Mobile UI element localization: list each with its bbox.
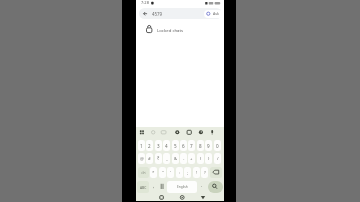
staticText: ABC	[140, 185, 147, 189]
button[interactable]: 9	[205, 140, 212, 151]
button[interactable]: 7	[188, 140, 195, 151]
button[interactable]: )	[205, 153, 212, 164]
button[interactable]: English	[167, 181, 197, 193]
button[interactable]: /	[214, 153, 221, 164]
button[interactable]: +	[188, 153, 195, 164]
staticText: ,	[153, 183, 155, 189]
staticText: ₹	[157, 156, 160, 162]
button[interactable]: 0	[214, 140, 221, 151]
button[interactable]	[210, 167, 222, 178]
button[interactable]: ;	[184, 167, 191, 178]
staticText: 5	[174, 143, 177, 149]
button[interactable]: ABC	[137, 181, 149, 193]
button[interactable]	[136, 22, 224, 35]
staticText: 3	[157, 143, 160, 149]
button[interactable]: (	[197, 153, 204, 164]
staticText: "	[162, 170, 164, 176]
button[interactable]: @	[138, 153, 145, 164]
staticText: Locked chats	[157, 27, 184, 33]
staticText: 0	[216, 143, 219, 149]
button[interactable]: -	[180, 153, 187, 164]
button[interactable]: ₹	[155, 153, 162, 164]
button[interactable]: &	[172, 153, 179, 164]
button[interactable]	[208, 181, 223, 193]
staticText: -	[183, 156, 185, 162]
staticText: *	[152, 170, 155, 176]
staticText: English	[177, 185, 188, 189]
staticText: 8	[199, 143, 202, 149]
button[interactable]: #	[146, 153, 153, 164]
staticText: ;	[187, 170, 189, 176]
button[interactable]: '	[167, 167, 174, 178]
button[interactable]: :	[176, 167, 183, 178]
button[interactable]: "	[159, 167, 166, 178]
staticText: ?	[204, 170, 206, 176]
staticText: 4579	[152, 11, 163, 17]
staticText: .	[201, 182, 203, 188]
staticText: /	[217, 156, 219, 162]
staticText: +	[190, 156, 193, 162]
button[interactable]: ?	[201, 167, 208, 178]
staticText: 9	[207, 143, 210, 149]
staticText: 6	[182, 143, 185, 149]
button[interactable]: 8	[197, 140, 204, 151]
button[interactable]	[139, 8, 222, 19]
button[interactable]: 4	[163, 140, 170, 151]
staticText: 4	[165, 143, 168, 149]
staticText: _	[166, 156, 168, 162]
staticText: #	[148, 156, 151, 162]
button[interactable]: 1	[138, 140, 145, 151]
button[interactable]: 3	[155, 140, 162, 151]
staticText: !	[196, 170, 198, 176]
staticText: 2	[148, 143, 151, 149]
button[interactable]: 2	[146, 140, 153, 151]
staticText: :	[179, 170, 181, 176]
staticText: @	[140, 156, 144, 162]
button[interactable]: *	[150, 167, 157, 178]
button[interactable]: _	[163, 153, 170, 164]
staticText: '	[170, 170, 171, 176]
staticText: 1	[140, 143, 143, 149]
button[interactable]: !	[193, 167, 200, 178]
staticText: 7	[190, 143, 193, 149]
staticText: )	[208, 156, 210, 162]
button[interactable]	[204, 10, 223, 18]
staticText: 7:28	[141, 0, 149, 5]
staticText: (	[200, 156, 202, 162]
staticText: &	[174, 156, 178, 162]
button[interactable]: 5	[172, 140, 179, 151]
staticText: Ask	[213, 11, 219, 16]
staticText: =\<	[141, 171, 146, 175]
button[interactable]: =\<	[138, 167, 149, 178]
button[interactable]: 6	[180, 140, 187, 151]
